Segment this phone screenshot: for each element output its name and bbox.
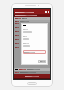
button[interactable] [14,74,50,78]
button[interactable] [38,60,46,63]
button[interactable]: Account [14,9,50,14]
button[interactable] [23,50,46,54]
